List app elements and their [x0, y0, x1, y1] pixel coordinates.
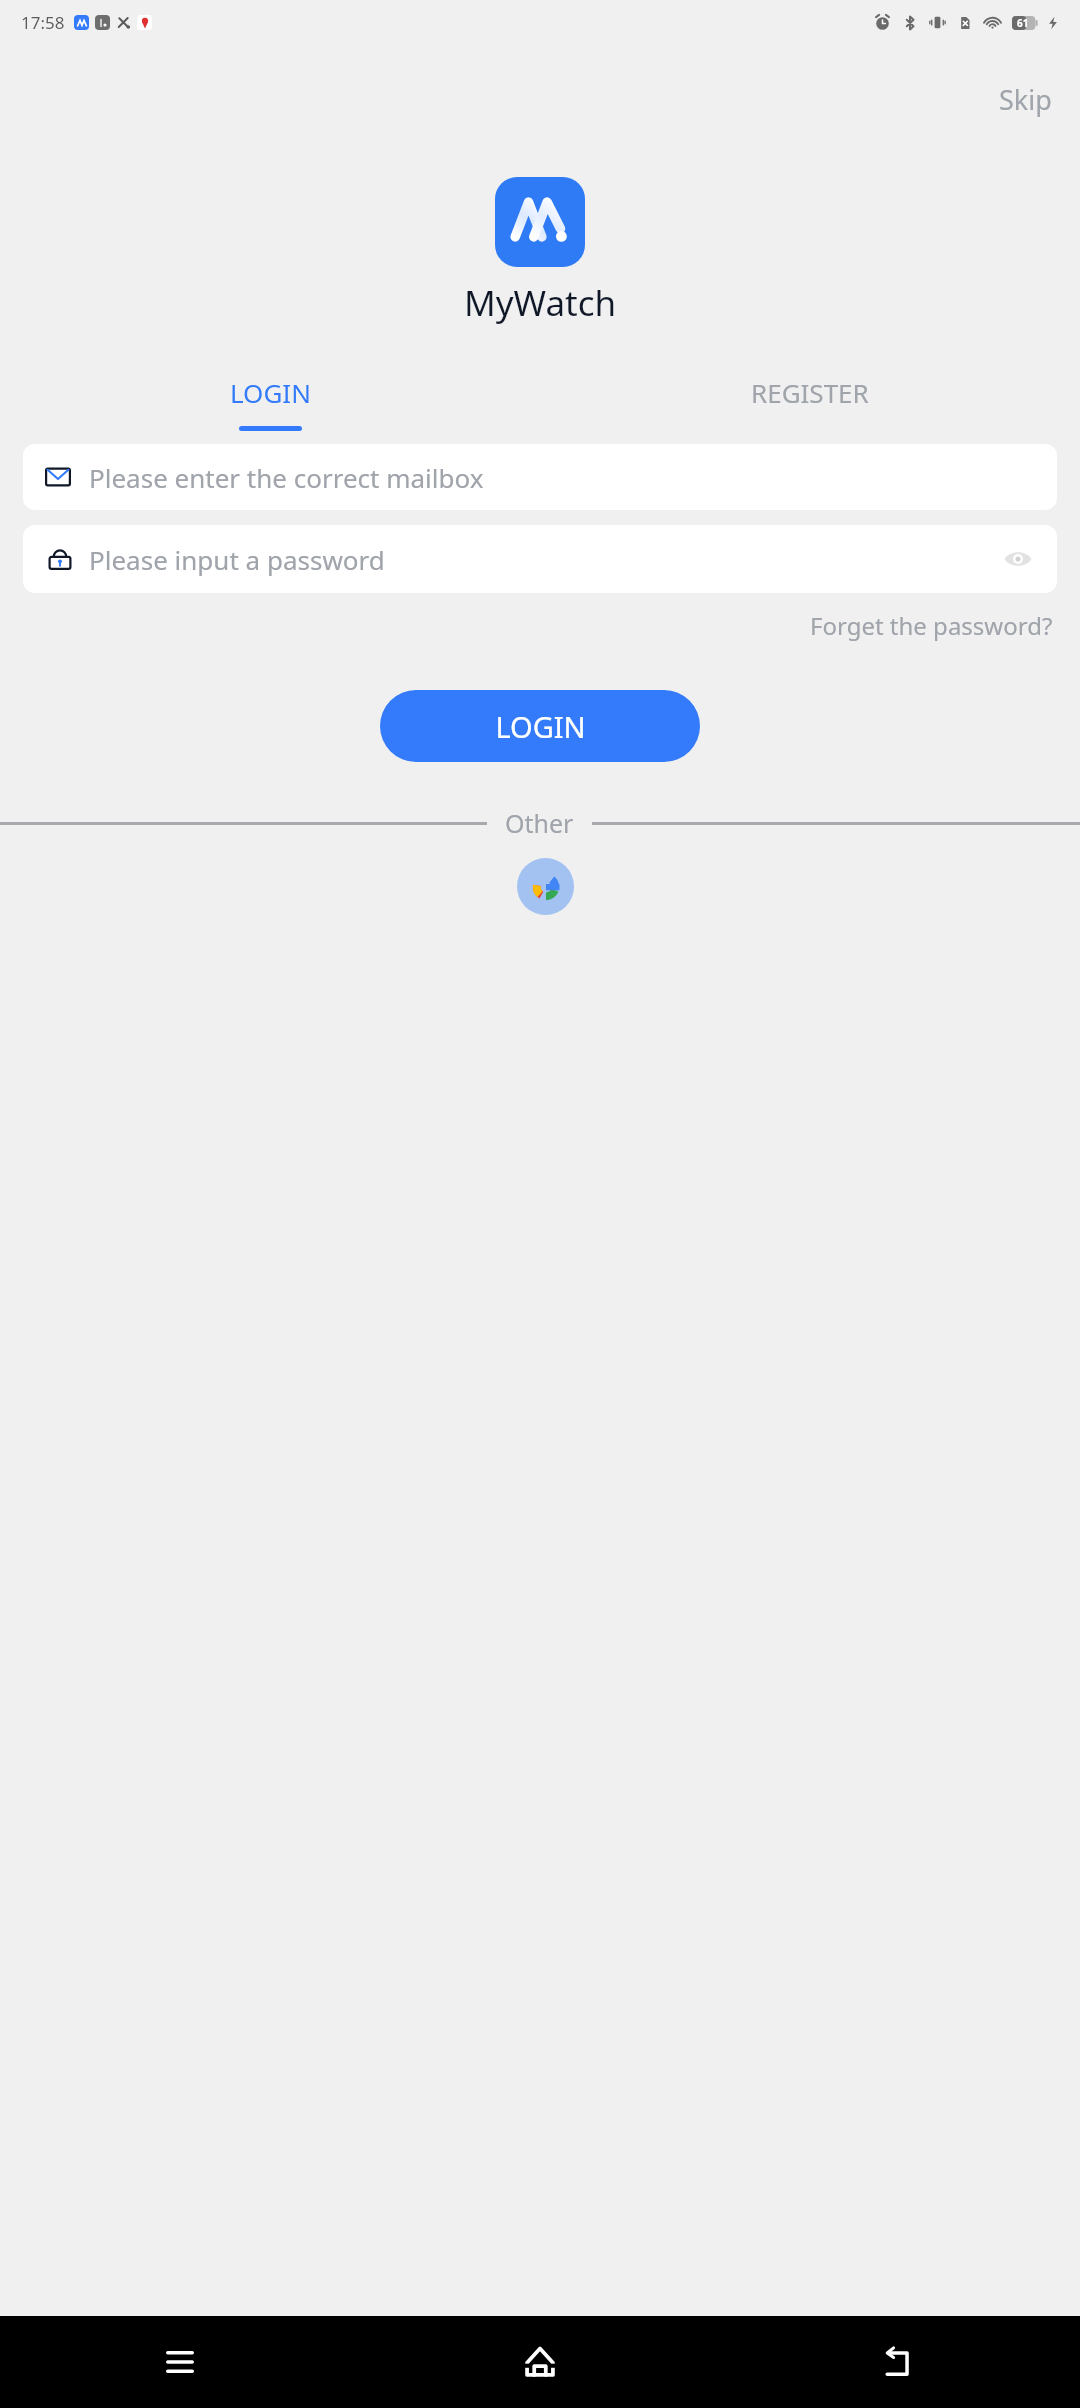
button[interactable]: LOGIN — [0, 375, 540, 431]
staticText: 61 — [1017, 16, 1029, 30]
staticText: LOGIN — [495, 707, 586, 746]
button[interactable]: Please input a password — [23, 525, 1057, 593]
staticText: Other — [505, 806, 574, 840]
staticText: REGISTER — [751, 375, 869, 410]
staticText: Skip — [999, 81, 1052, 118]
button[interactable]: LOGIN — [380, 690, 700, 762]
button[interactable]: Home — [360, 2316, 720, 2408]
button[interactable]: Show password — [1001, 542, 1035, 576]
button[interactable]: Back — [720, 2316, 1080, 2408]
staticText: MyWatch — [464, 279, 617, 327]
staticText: Please input a password — [89, 542, 1001, 577]
button[interactable]: Skip — [983, 73, 1068, 126]
staticText: LOGIN — [230, 375, 311, 410]
staticText: Forget the password? — [810, 609, 1053, 642]
staticText: Please enter the correct mailbox — [89, 460, 484, 495]
button[interactable]: Please enter the correct mailbox — [23, 444, 1057, 510]
staticText: 17:58 — [21, 11, 65, 34]
button[interactable]: REGISTER — [540, 375, 1080, 431]
button[interactable]: Sign in with Google — [517, 858, 574, 915]
button[interactable]: Recent apps — [0, 2316, 360, 2408]
button[interactable]: Forget the password? — [806, 605, 1057, 646]
